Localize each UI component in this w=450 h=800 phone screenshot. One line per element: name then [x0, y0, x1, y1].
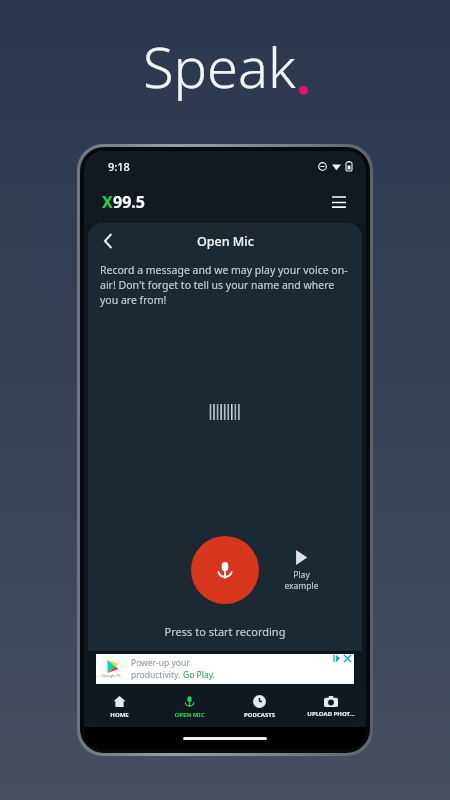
staticText: Open Mic: [197, 233, 254, 250]
staticText: 99.5: [113, 191, 145, 213]
button[interactable]: Play example: [276, 550, 326, 591]
staticText: Google Pl..: [102, 673, 123, 678]
staticText: Record a message and we may play your vo…: [100, 263, 350, 307]
button[interactable]: HOME: [84, 687, 154, 727]
staticText: productivity.: [131, 669, 183, 681]
staticText: X: [102, 191, 113, 213]
staticText: PODCASTS: [244, 711, 275, 719]
staticText: OPEN MIC: [174, 711, 205, 719]
button[interactable]: Start recording: [191, 536, 259, 604]
staticText: 9:18: [108, 159, 130, 174]
staticText: Press to start recording: [88, 624, 362, 639]
staticText: Go Play.: [183, 669, 215, 681]
staticText: Speak: [143, 28, 296, 104]
button[interactable]: Menu: [324, 187, 354, 217]
staticText: Play example: [284, 569, 319, 591]
button[interactable]: OPEN MIC: [154, 687, 224, 727]
button[interactable]: Back: [94, 227, 122, 255]
staticText: UPLOAD PHOT...: [307, 710, 355, 718]
staticText: HOME: [110, 711, 129, 719]
staticText: Power-up your: [131, 657, 190, 669]
button[interactable]: Google Pl..: [96, 654, 354, 684]
button[interactable]: UPLOAD PHOT...: [295, 687, 366, 727]
button[interactable]: PODCASTS: [224, 687, 295, 727]
